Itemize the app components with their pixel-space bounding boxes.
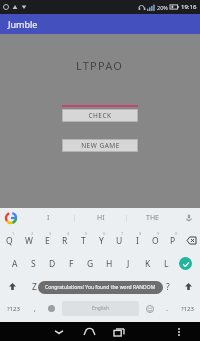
staticText: I [47, 213, 50, 223]
staticText: LTPPAO [76, 58, 124, 73]
staticText: G [87, 258, 94, 270]
staticText: 9 [157, 231, 160, 236]
button[interactable]: Z [24, 275, 44, 298]
button[interactable]: , [26, 298, 43, 319]
button[interactable]: CHECK [63, 110, 137, 121]
staticText: M [145, 281, 153, 293]
button[interactable]: English [62, 301, 139, 316]
button[interactable]: 0 [164, 229, 182, 252]
staticText: W [25, 235, 33, 247]
button[interactable]: S [24, 252, 43, 275]
button[interactable]: Shift [0, 275, 24, 298]
staticText: V [89, 281, 95, 293]
staticText: 20% [157, 4, 168, 11]
staticText: ?123 [181, 305, 194, 313]
staticText: Z [32, 281, 37, 293]
button[interactable]: H [100, 252, 119, 275]
button[interactable]: Backspace [182, 229, 200, 252]
button[interactable]: X [44, 275, 63, 298]
button[interactable]: J [119, 252, 138, 275]
button[interactable]: A [5, 252, 24, 275]
staticText: 5 [85, 231, 88, 236]
staticText: 8 [139, 231, 142, 236]
button[interactable]: NEW GAME [63, 140, 137, 151]
staticText: T [81, 235, 86, 247]
button[interactable]: ?123 [0, 298, 26, 319]
button[interactable]: L [157, 252, 176, 275]
button[interactable]: Recent apps [104, 322, 134, 341]
button[interactable]: Shift [177, 275, 200, 298]
staticText: B [108, 281, 114, 293]
staticText: 2 [31, 231, 34, 236]
staticText: Congratulations! You found the word RAND… [45, 284, 156, 291]
button[interactable]: C [63, 275, 82, 298]
button[interactable]: Home [74, 322, 104, 341]
button[interactable]: K [138, 252, 157, 275]
staticText: I [136, 235, 139, 247]
staticText: J [127, 258, 130, 270]
staticText: 4 [67, 231, 70, 236]
button[interactable]: THE [127, 208, 178, 228]
staticText: English [92, 305, 110, 312]
staticText: , [34, 304, 36, 314]
button[interactable]: . [158, 298, 175, 319]
staticText: S [31, 258, 36, 270]
button[interactable]: 6 [92, 229, 110, 252]
button[interactable]: 3 [38, 229, 56, 252]
staticText: 6 [103, 231, 106, 236]
staticText: . [166, 304, 168, 314]
staticText: D [49, 258, 56, 270]
staticText: ? [166, 281, 170, 293]
staticText: N [126, 281, 133, 293]
staticText: O [152, 235, 159, 247]
button[interactable]: Enter [176, 252, 195, 275]
button[interactable]: D [43, 252, 62, 275]
button[interactable]: Emoji [141, 298, 158, 319]
staticText: L [164, 258, 169, 270]
staticText: 7 [121, 231, 124, 236]
button[interactable]: 8 [128, 229, 146, 252]
staticText: H [106, 258, 113, 270]
staticText: 19:16 [181, 3, 197, 11]
button[interactable]: ?123 [175, 298, 200, 319]
staticText: E [45, 235, 50, 247]
button[interactable]: 9 [146, 229, 164, 252]
staticText: A [12, 258, 18, 270]
staticText: Y [99, 235, 104, 247]
button[interactable]: More options [167, 322, 191, 341]
button[interactable]: 5 [74, 229, 92, 252]
button[interactable]: M [139, 275, 158, 298]
button[interactable]: 7 [110, 229, 128, 252]
staticText: 3 [49, 231, 52, 236]
button[interactable]: Hide keyboard [43, 322, 74, 341]
button[interactable]: V [82, 275, 101, 298]
staticText: C [70, 281, 76, 293]
staticText: HI [97, 213, 105, 223]
button[interactable]: Google search [5, 212, 17, 224]
staticText: K [145, 258, 151, 270]
staticText: P [170, 235, 176, 247]
staticText: Q [6, 235, 13, 247]
staticText: 0 [175, 231, 178, 236]
button[interactable]: G [81, 252, 100, 275]
staticText: F [69, 258, 74, 270]
button[interactable]: N [120, 275, 139, 298]
staticText: CHECK [88, 111, 112, 120]
button[interactable] [62, 91, 138, 107]
staticText: Jumble [8, 18, 38, 30]
button[interactable]: Language [43, 298, 60, 319]
staticText: 1 [12, 231, 15, 236]
button[interactable]: 4 [56, 229, 74, 252]
button[interactable]: B [101, 275, 120, 298]
button[interactable]: ? [158, 275, 177, 298]
button[interactable]: F [62, 252, 81, 275]
button[interactable]: 2 [19, 229, 38, 252]
staticText: ?123 [7, 305, 20, 313]
staticText: R [62, 235, 68, 247]
button[interactable]: HI [75, 208, 126, 228]
button[interactable]: Voice input [183, 212, 195, 224]
button[interactable]: I [22, 208, 74, 228]
staticText: NEW GAME [81, 141, 120, 150]
button[interactable]: 1 [0, 229, 19, 252]
staticText: U [116, 235, 123, 247]
